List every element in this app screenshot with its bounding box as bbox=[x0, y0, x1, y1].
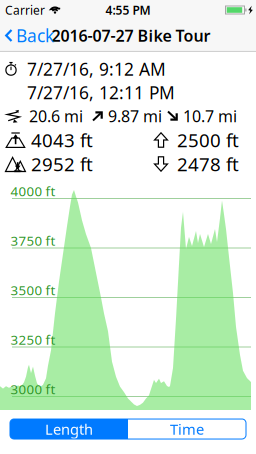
staticText: 3250 ft bbox=[10, 331, 55, 348]
staticText: 2016-07-27 Bike Tour bbox=[51, 25, 210, 46]
button[interactable]: Back bbox=[5, 24, 54, 47]
staticText: 4043 ft bbox=[31, 128, 93, 152]
staticText: 2500 ft bbox=[177, 128, 239, 152]
button[interactable]: Length bbox=[10, 419, 128, 439]
button[interactable]: Time bbox=[128, 419, 246, 439]
staticText: 3000 ft bbox=[10, 380, 55, 398]
staticText: 20.6 mi bbox=[29, 105, 83, 127]
staticText: 4:55 PM bbox=[105, 2, 150, 18]
staticText: Carrier bbox=[5, 2, 45, 18]
staticText: 3500 ft bbox=[10, 281, 55, 299]
staticText: 10.7 mi bbox=[183, 105, 237, 127]
staticText: Back bbox=[16, 24, 54, 47]
staticText: 7/27/16, 9:12 AM bbox=[27, 57, 166, 80]
staticText: 7/27/16, 12:11 PM bbox=[27, 81, 175, 104]
staticText: 9.87 mi bbox=[108, 105, 162, 127]
staticText: 4000 ft bbox=[10, 182, 55, 200]
staticText: Length bbox=[45, 419, 93, 439]
staticText: Time bbox=[170, 419, 204, 439]
staticText: 3750 ft bbox=[10, 232, 55, 249]
staticText: 2952 ft bbox=[31, 152, 93, 176]
staticText: 2478 ft bbox=[177, 152, 239, 176]
